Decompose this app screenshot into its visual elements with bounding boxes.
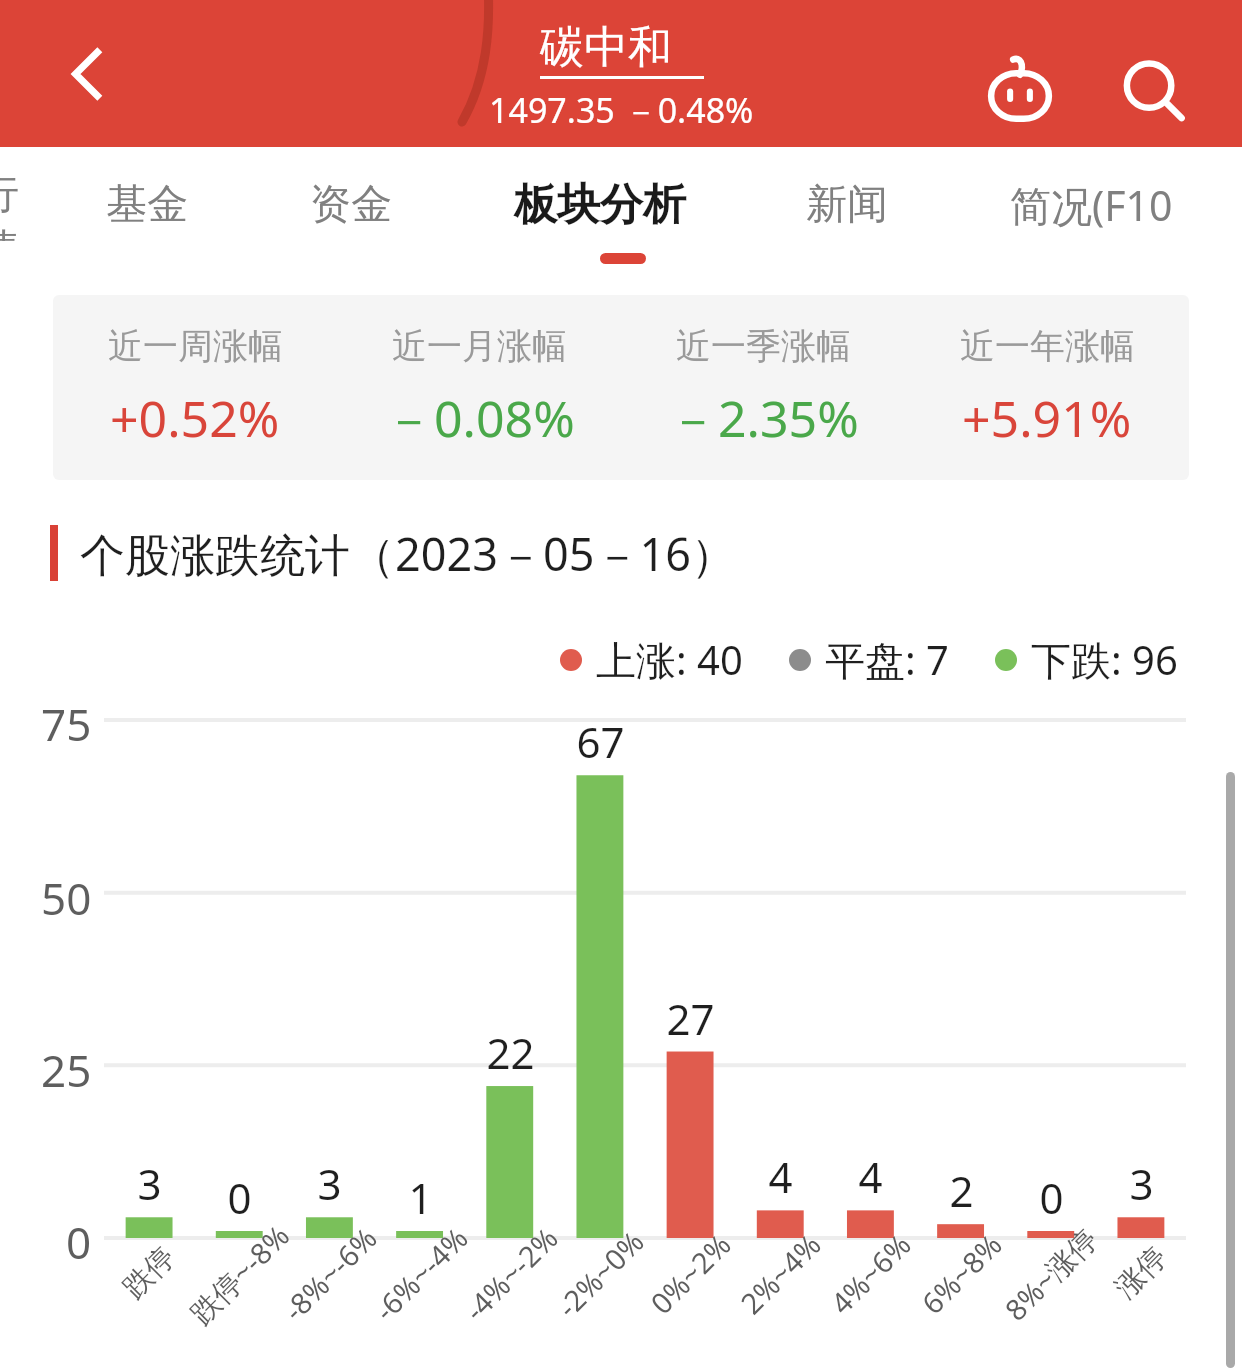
staticText: 1497.35 －0.48% <box>489 87 754 133</box>
staticText: 4 <box>768 1148 793 1205</box>
staticText: 碳中和 <box>540 20 672 75</box>
staticText: 0 <box>66 1212 92 1272</box>
staticText: -2%~0% <box>548 1221 652 1325</box>
staticText: 3 <box>1129 1155 1154 1212</box>
button[interactable]: 基金 <box>96 163 198 247</box>
staticText: 板块分析 <box>514 178 686 232</box>
staticText: -8%~-6% <box>274 1218 385 1329</box>
staticText: 4%~6% <box>822 1225 918 1322</box>
staticText: 简况(F10 <box>1010 177 1173 233</box>
staticText: －0.08% <box>384 384 575 452</box>
button[interactable]: 行情 <box>0 169 48 241</box>
staticText: 67 <box>576 713 625 770</box>
staticText: 近一月涨幅 <box>392 324 567 368</box>
staticText: +0.52% <box>110 384 280 452</box>
staticText: －2.35% <box>668 384 859 452</box>
staticText: 跌停~-8% <box>181 1216 298 1332</box>
staticText: -4%~-2% <box>455 1218 566 1329</box>
staticText: 平盘: 7 <box>825 632 949 687</box>
staticText: 2 <box>949 1162 974 1219</box>
staticText: 基金 <box>106 179 188 231</box>
staticText: 个股涨跌统计（2023－05－16） <box>80 523 736 584</box>
staticText: 25 <box>41 1040 92 1100</box>
staticText: 跌停 <box>115 1239 183 1306</box>
staticText: 1 <box>408 1169 433 1226</box>
staticText: 涨停 <box>1107 1239 1175 1306</box>
staticText: 3 <box>317 1155 342 1212</box>
staticText: 0 <box>227 1169 252 1226</box>
staticText: 8%~涨停 <box>996 1219 1106 1329</box>
staticText: 22 <box>486 1024 535 1081</box>
button[interactable]: 资金 <box>300 163 402 247</box>
staticText: 近一周涨幅 <box>108 324 283 368</box>
button[interactable]: Back <box>40 26 136 122</box>
staticText: 4 <box>858 1148 883 1205</box>
staticText: 近一季涨幅 <box>676 324 851 368</box>
staticText: 新闻 <box>806 179 888 231</box>
staticText: 2%~4% <box>732 1225 828 1322</box>
button[interactable]: 近一周涨幅 <box>53 295 1189 480</box>
staticText: +5.91% <box>962 384 1132 452</box>
staticText: 上涨: 40 <box>596 632 743 687</box>
staticText: 75 <box>41 694 92 754</box>
button[interactable]: 板块分析 <box>504 163 696 247</box>
staticText: 50 <box>41 868 92 928</box>
staticText: 27 <box>666 990 715 1047</box>
staticText: 下跌: 96 <box>1031 632 1178 687</box>
staticText: 0%~2% <box>642 1225 738 1322</box>
staticText: 0 <box>1039 1169 1064 1226</box>
staticText: -6%~-4% <box>365 1218 476 1329</box>
staticText: 资金 <box>310 179 392 231</box>
button[interactable]: Search <box>1100 38 1210 148</box>
button[interactable]: 简况(F10 <box>1000 163 1183 247</box>
staticText: 近一年涨幅 <box>960 324 1135 368</box>
staticText: 3 <box>137 1155 162 1212</box>
staticText: 6%~8% <box>913 1225 1009 1322</box>
button[interactable]: AI assistant <box>965 38 1075 148</box>
button[interactable]: 新闻 <box>796 163 898 247</box>
staticText: 行情 <box>0 169 48 241</box>
